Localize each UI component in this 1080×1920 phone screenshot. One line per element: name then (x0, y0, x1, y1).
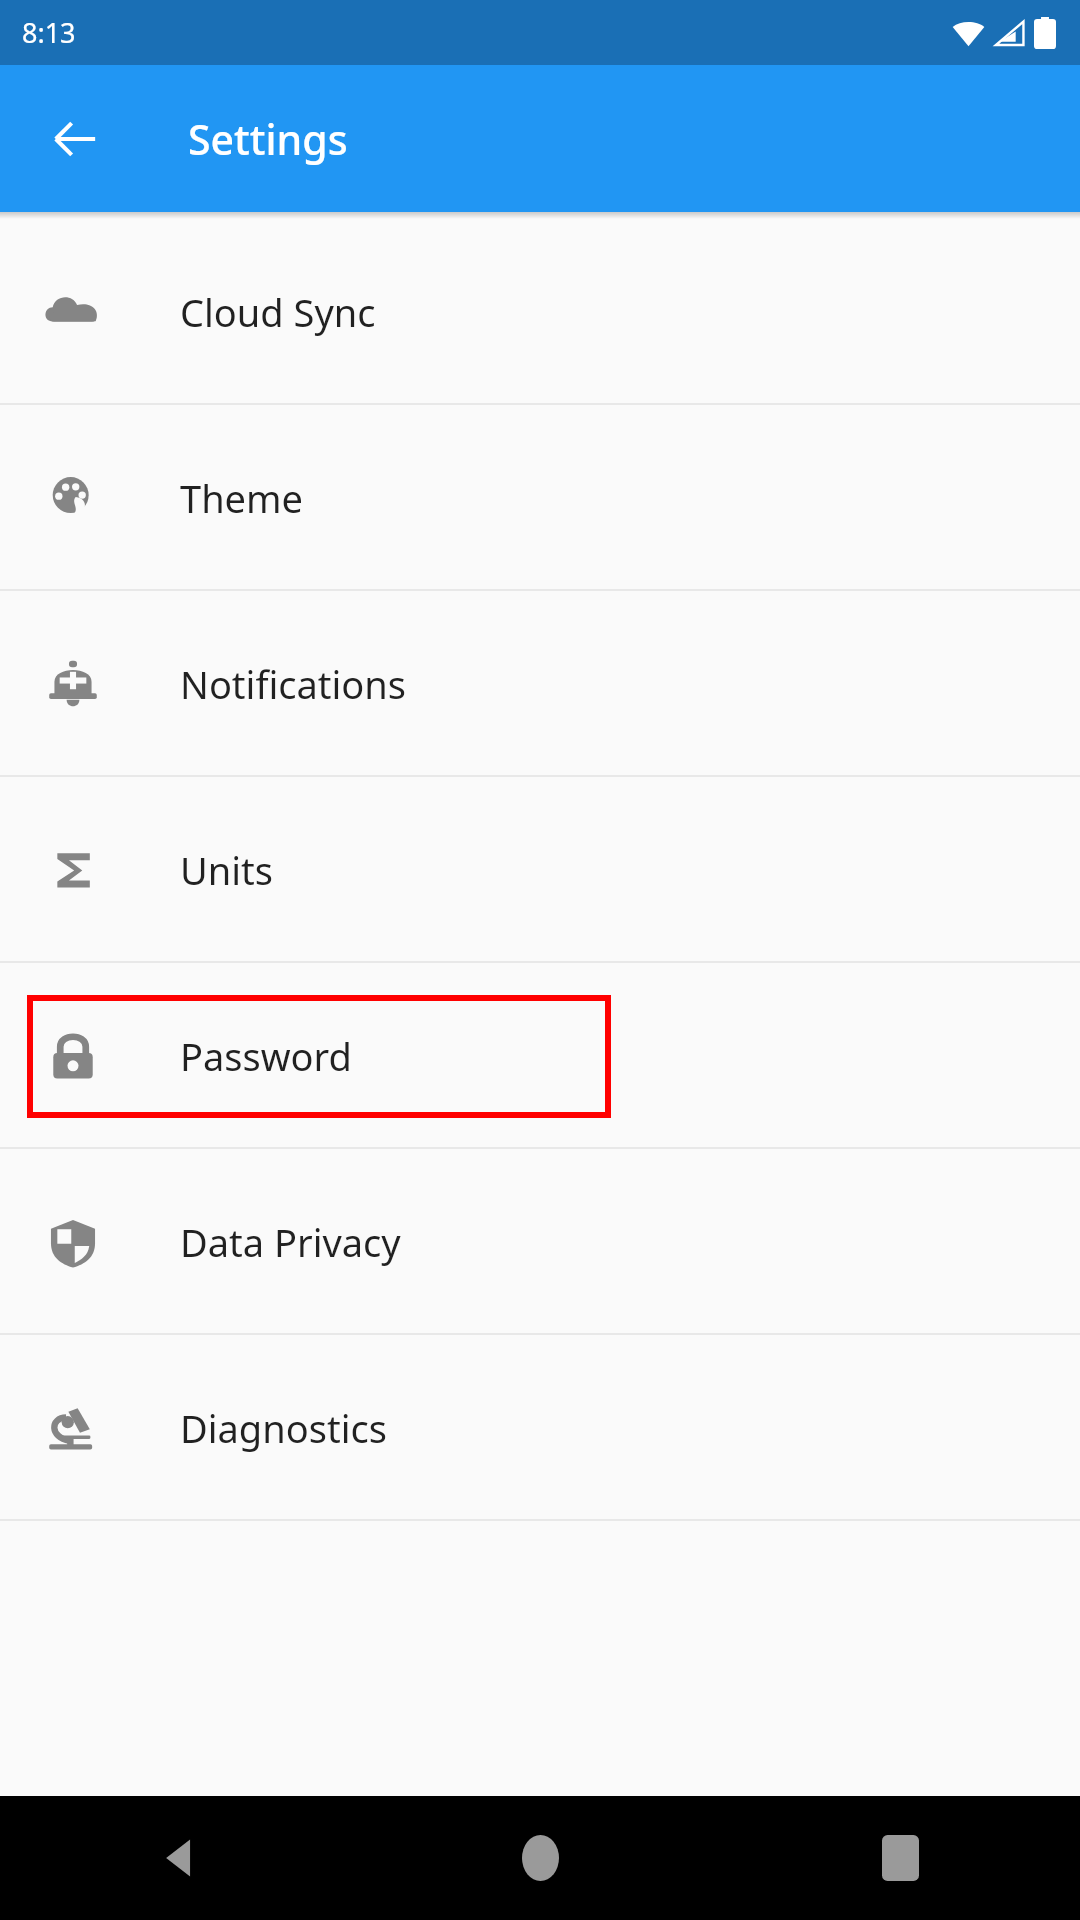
staticText: 8:13 (22, 14, 76, 51)
button[interactable]: Back (0, 1796, 360, 1920)
button[interactable]: Notifications (0, 591, 1080, 777)
button[interactable]: Theme (0, 405, 1080, 591)
button[interactable]: Back (27, 91, 123, 187)
button[interactable]: Home (360, 1796, 720, 1920)
staticText: Diagnostics (180, 1402, 387, 1454)
button[interactable]: Password (0, 963, 1080, 1149)
button[interactable]: Units (0, 777, 1080, 963)
staticText: Data Privacy (180, 1216, 401, 1268)
staticText: Password (180, 1030, 352, 1082)
button[interactable]: Data Privacy (0, 1149, 1080, 1335)
button[interactable]: Recent apps (720, 1796, 1080, 1920)
staticText: Cloud Sync (180, 286, 376, 338)
button[interactable]: Cloud Sync (0, 219, 1080, 405)
staticText: Theme (180, 472, 304, 524)
staticText: Units (180, 844, 273, 896)
staticText: Notifications (180, 658, 407, 710)
staticText: Settings (188, 111, 348, 167)
button[interactable]: Diagnostics (0, 1335, 1080, 1521)
